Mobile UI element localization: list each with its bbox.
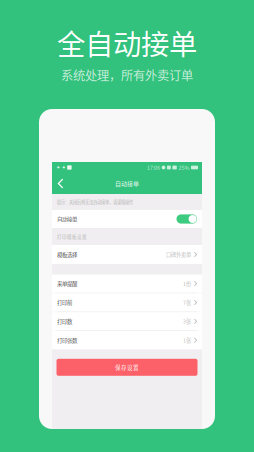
button[interactable]: 模板选择	[52, 245, 202, 264]
staticText: 25%	[178, 164, 189, 171]
staticText: 模板选择	[57, 250, 77, 258]
staticText: 打印张数	[57, 336, 77, 344]
staticText: 17:06	[147, 164, 160, 171]
staticText: ✦	[62, 164, 66, 171]
button[interactable]: 打印张数	[52, 331, 202, 349]
button[interactable]: 打印数	[52, 312, 202, 330]
staticText: ✦	[56, 164, 60, 171]
staticText: 提示：关闭后将无法自动接单，请谨慎操作	[57, 199, 133, 205]
staticText: 系统处理，所有外卖订单	[61, 66, 193, 84]
staticText: 自动接单	[115, 179, 139, 188]
staticText: 口碑外卖单	[166, 251, 191, 258]
button[interactable]: 保存设置	[56, 359, 197, 376]
staticText: 保存设置	[115, 363, 139, 371]
staticText: 7张	[183, 299, 191, 306]
staticText: 打印模板设置	[57, 233, 87, 240]
staticText: 3张	[183, 318, 191, 325]
staticText: 1份	[183, 280, 191, 287]
staticText: 1张	[183, 336, 191, 344]
staticText: 打印数	[57, 317, 72, 325]
staticText: 自动接单	[57, 215, 77, 223]
button[interactable]: 打印前	[52, 293, 202, 312]
button[interactable]: 自动接单	[52, 210, 202, 228]
button[interactable]: 来单提醒	[52, 274, 202, 293]
staticText: 全自动接单	[57, 22, 197, 63]
button[interactable]: Back	[52, 173, 69, 194]
staticText: 来单提醒	[57, 280, 77, 288]
staticText: 打印前	[57, 298, 72, 306]
